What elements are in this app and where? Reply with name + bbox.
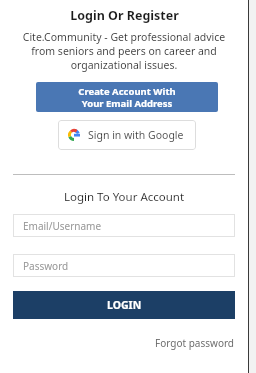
staticText: Forgot password [155, 336, 235, 350]
staticText: Create Account With Your Email Address [78, 85, 176, 110]
button[interactable]: Create Account With Your Email Address [36, 82, 218, 112]
staticText: LOGIN [107, 298, 142, 312]
staticText: Sign in with Google [88, 128, 184, 142]
button[interactable]: Google logo [58, 120, 196, 150]
staticText: Login Or Register [70, 7, 179, 24]
staticText: Login To Your Account [64, 189, 185, 205]
staticText: Cite.Community - Get professional advice… [12, 30, 236, 72]
button[interactable]: Email/Username [13, 214, 235, 237]
button[interactable]: Forgot password [155, 336, 235, 350]
other: Google logo [68, 129, 80, 141]
staticText: Password [23, 259, 69, 273]
staticText: Email/Username [23, 219, 102, 233]
button[interactable]: LOGIN [13, 291, 235, 319]
button[interactable]: Password [13, 254, 235, 277]
